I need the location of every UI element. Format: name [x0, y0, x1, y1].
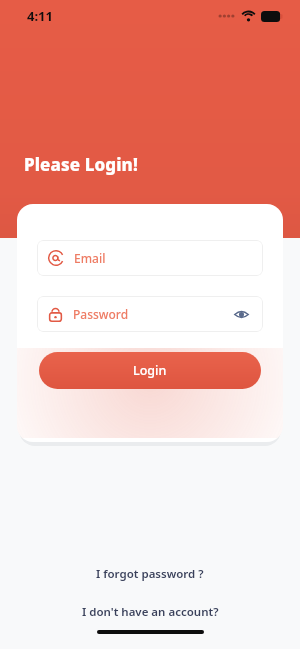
button[interactable]: I forgot password ? — [80, 562, 220, 586]
staticText: I don't have an account? — [82, 604, 219, 620]
button[interactable]: Show password — [230, 303, 252, 325]
button[interactable]: Login — [39, 352, 261, 389]
button[interactable]: Email — [37, 240, 263, 276]
staticText: 4:11 — [27, 7, 53, 25]
staticText: Password — [73, 306, 129, 322]
staticText: Please Login! — [24, 153, 138, 176]
button[interactable]: Password — [37, 296, 263, 332]
staticText: Login — [133, 362, 167, 379]
staticText: Email — [74, 250, 106, 266]
staticText: I forgot password ? — [96, 566, 204, 582]
button[interactable]: I don't have an account? — [66, 600, 235, 624]
